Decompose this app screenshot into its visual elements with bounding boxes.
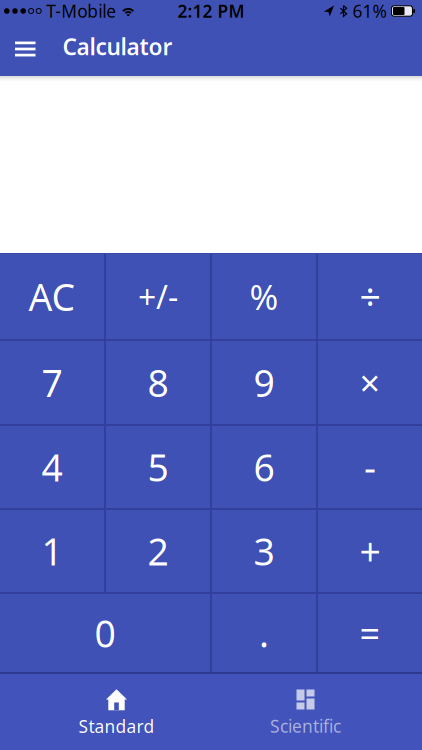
staticText: 61% <box>352 0 386 22</box>
staticText: 3 <box>253 526 274 576</box>
staticText: T-Mobile <box>46 0 116 22</box>
button[interactable]: 0 <box>0 594 210 672</box>
staticText: = <box>359 609 380 657</box>
staticText: . <box>259 608 269 658</box>
button[interactable]: × <box>318 341 422 424</box>
button[interactable]: AC <box>0 254 104 339</box>
staticText: 0 <box>94 608 115 658</box>
button[interactable]: +/- <box>106 254 210 339</box>
button[interactable]: . <box>212 594 316 672</box>
staticText: 9 <box>253 358 274 407</box>
button[interactable]: 6 <box>212 426 316 508</box>
button[interactable]: 1 <box>0 510 104 592</box>
button[interactable]: + <box>318 510 422 592</box>
staticText: % <box>249 273 278 319</box>
button[interactable]: ÷ <box>318 254 422 339</box>
button[interactable]: 2 <box>106 510 210 592</box>
staticText: AC <box>28 272 75 321</box>
staticText: × <box>359 359 380 406</box>
button[interactable]: 7 <box>0 341 104 424</box>
staticText: Scientific <box>270 714 341 737</box>
staticText: 7 <box>41 358 62 407</box>
staticText: 6 <box>253 442 274 492</box>
staticText: - <box>364 442 376 492</box>
staticText: 8 <box>147 358 168 407</box>
button[interactable]: Standard <box>22 674 211 750</box>
button[interactable]: 3 <box>212 510 316 592</box>
button[interactable]: % <box>212 254 316 339</box>
staticText: 2 <box>147 526 168 576</box>
button[interactable]: 5 <box>106 426 210 508</box>
button[interactable]: - <box>318 426 422 508</box>
button[interactable]: Menu <box>0 22 47 76</box>
staticText: 1 <box>41 526 62 576</box>
staticText: + <box>359 526 380 576</box>
button[interactable]: 9 <box>212 341 316 424</box>
staticText: 2:12 PM <box>177 0 244 22</box>
button[interactable]: Scientific <box>211 674 400 750</box>
button[interactable]: 4 <box>0 426 104 508</box>
staticText: 4 <box>41 442 62 492</box>
staticText: ÷ <box>359 272 380 321</box>
staticText: Standard <box>78 715 154 738</box>
staticText: 5 <box>147 442 168 492</box>
button[interactable]: 8 <box>106 341 210 424</box>
button[interactable]: = <box>318 594 422 672</box>
staticText: Calculator <box>62 31 172 61</box>
staticText: +/- <box>138 275 178 318</box>
